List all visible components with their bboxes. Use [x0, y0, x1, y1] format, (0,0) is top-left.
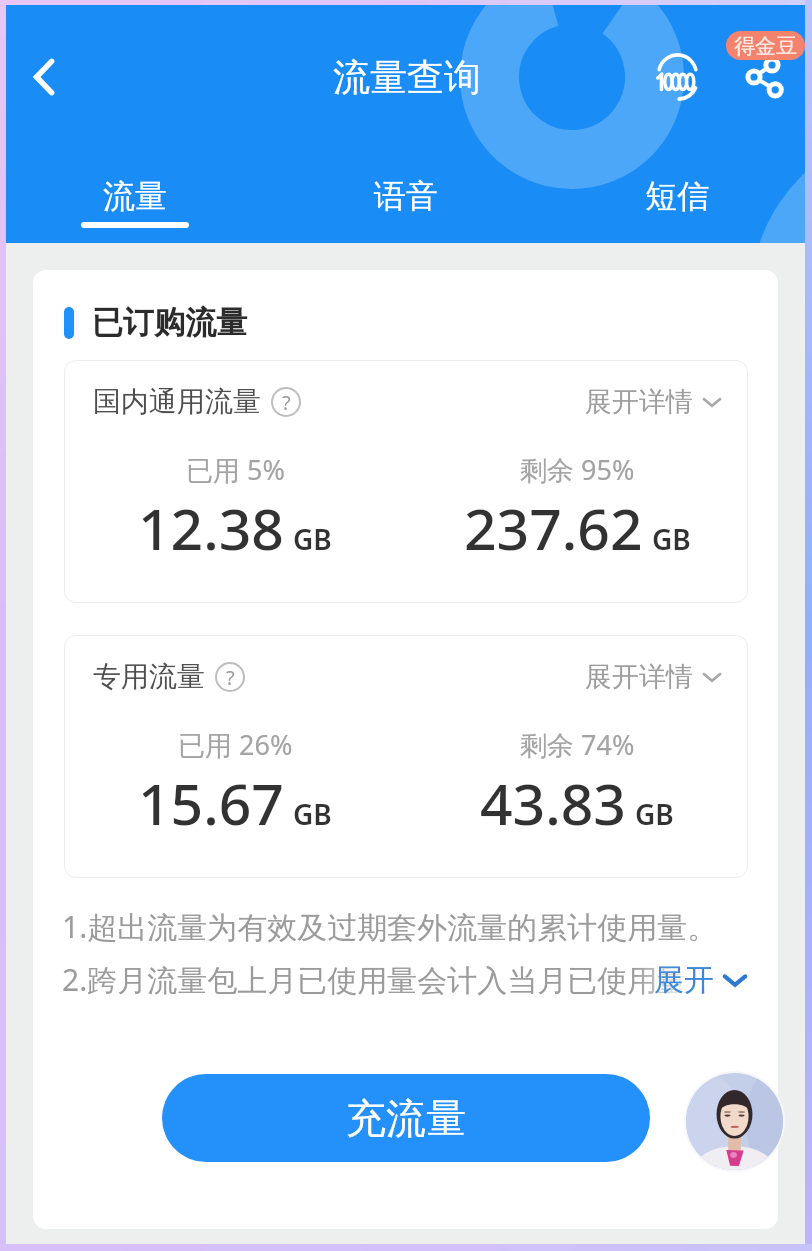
staticText: 2.跨月流量包上月已使用量会计入当月已使用量	[62, 959, 688, 1000]
staticText: GB	[652, 520, 691, 558]
staticText: 流量	[103, 176, 167, 216]
staticText: 得金豆	[734, 33, 797, 59]
staticText: 1.超出流量为有效及过期套外流量的累计使用量。	[62, 906, 718, 947]
staticText: 专用流量	[93, 659, 205, 694]
staticText: 237.62	[464, 489, 643, 567]
staticText: 展开详情	[585, 385, 693, 419]
staticText: ?	[282, 389, 291, 416]
staticText: 剩余 95%	[520, 451, 635, 488]
button[interactable]: Customer service 10000	[653, 53, 701, 101]
button[interactable]: Back	[16, 50, 70, 104]
button[interactable]: 展开详情	[585, 660, 724, 694]
button[interactable]: Online assistant	[686, 1073, 783, 1170]
button[interactable]: Share	[744, 57, 784, 97]
staticText: 已订购流量	[92, 303, 247, 342]
button[interactable]: 展开	[654, 961, 750, 999]
staticText: 已用 26%	[178, 726, 293, 763]
staticText: ?	[226, 664, 235, 691]
staticText: 展开详情	[585, 660, 693, 694]
button[interactable]: 语音	[270, 176, 541, 228]
staticText: 语音	[374, 176, 438, 216]
staticText: GB	[635, 795, 674, 833]
button[interactable]: 充流量	[162, 1074, 650, 1162]
button[interactable]: 展开详情	[585, 385, 724, 419]
staticText: 展开	[654, 961, 714, 999]
staticText: 43.83	[480, 764, 626, 842]
button[interactable]: 流量	[0, 176, 270, 228]
staticText: GB	[293, 795, 332, 833]
staticText: 剩余 74%	[520, 726, 635, 763]
staticText: 15.67	[138, 764, 284, 842]
staticText: 流量查询	[333, 54, 481, 101]
staticText: 国内通用流量	[93, 384, 261, 419]
staticText: 已用 5%	[186, 451, 285, 488]
button[interactable]: 短信	[541, 176, 812, 228]
staticText: 充流量	[346, 1093, 466, 1143]
staticText: 12.38	[138, 489, 284, 567]
staticText: 短信	[645, 176, 709, 216]
staticText: GB	[293, 520, 332, 558]
